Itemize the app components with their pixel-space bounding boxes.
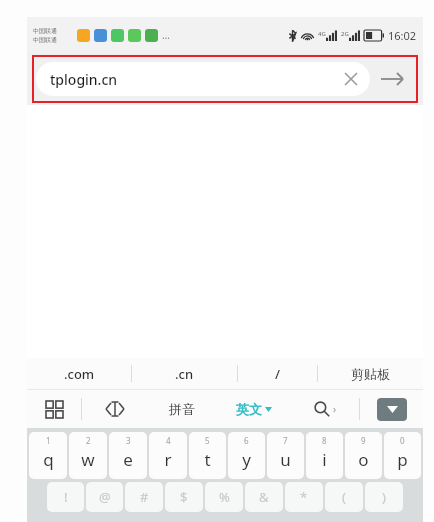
staticText: % bbox=[219, 488, 230, 506]
button[interactable]: 2 bbox=[69, 432, 107, 479]
staticText: 2G bbox=[341, 30, 349, 38]
staticText: & bbox=[259, 488, 269, 506]
button[interactable]: 6 bbox=[228, 432, 265, 479]
button[interactable]: 0 bbox=[384, 432, 421, 479]
button[interactable]: .cn bbox=[132, 358, 237, 389]
button[interactable]: 9 bbox=[345, 432, 382, 479]
staticText: 拼音 bbox=[169, 401, 195, 417]
staticText: e bbox=[123, 448, 133, 471]
staticText: / bbox=[275, 365, 281, 383]
button[interactable]: tplogin.cn bbox=[36, 62, 370, 96]
staticText: q bbox=[43, 448, 54, 471]
staticText: # bbox=[140, 488, 149, 506]
button[interactable]: 1 bbox=[29, 432, 67, 479]
staticText: ) bbox=[382, 488, 386, 506]
staticText: 7 bbox=[283, 435, 288, 446]
staticText: y bbox=[242, 448, 251, 471]
staticText: 0 bbox=[400, 435, 405, 446]
button[interactable]: 8 bbox=[306, 432, 343, 479]
staticText: tplogin.cn bbox=[50, 70, 340, 89]
button[interactable]: & bbox=[245, 482, 283, 512]
button[interactable] bbox=[27, 390, 81, 428]
staticText: u bbox=[280, 448, 291, 471]
staticText: 6 bbox=[244, 435, 249, 446]
button[interactable]: % bbox=[205, 482, 243, 512]
staticText: 剪贴板 bbox=[351, 366, 390, 382]
button[interactable]: 7 bbox=[267, 432, 304, 479]
button[interactable]: Clear bbox=[340, 68, 362, 90]
staticText: 1 bbox=[46, 435, 51, 446]
staticText: 4 bbox=[166, 435, 171, 446]
button[interactable]: › bbox=[292, 390, 359, 428]
button[interactable]: 3 bbox=[109, 432, 147, 479]
staticText: $ bbox=[180, 488, 188, 506]
button[interactable]: .com bbox=[27, 358, 131, 389]
button[interactable]: $ bbox=[165, 482, 203, 512]
staticText: w bbox=[81, 448, 95, 471]
staticText: ! bbox=[64, 488, 68, 506]
button[interactable]: @ bbox=[86, 482, 123, 512]
staticText: .com bbox=[64, 365, 95, 383]
staticText: @ bbox=[99, 488, 111, 506]
staticText: * bbox=[300, 488, 308, 506]
button[interactable]: 拼音 bbox=[148, 390, 215, 428]
staticText: 2 bbox=[86, 435, 91, 446]
staticText: p bbox=[397, 448, 408, 471]
staticText: 9 bbox=[361, 435, 366, 446]
button[interactable]: 剪贴板 bbox=[318, 358, 423, 389]
button[interactable]: ( bbox=[325, 482, 363, 512]
button[interactable]: 4 bbox=[149, 432, 187, 479]
staticText: ( bbox=[342, 488, 346, 506]
staticText: 3 bbox=[126, 435, 131, 446]
button[interactable]: ! bbox=[47, 482, 84, 512]
staticText: › bbox=[333, 402, 337, 416]
staticText: 4G bbox=[318, 30, 326, 38]
button[interactable]: Go bbox=[370, 59, 414, 99]
staticText: 5 bbox=[205, 435, 210, 446]
staticText: .cn bbox=[175, 365, 194, 383]
button[interactable]: / bbox=[238, 358, 317, 389]
staticText: 16:02 bbox=[388, 28, 417, 43]
button[interactable]: Hide keyboard bbox=[377, 398, 407, 421]
staticText: 中国联通 bbox=[33, 36, 57, 44]
staticText: t bbox=[204, 448, 211, 471]
button[interactable] bbox=[82, 390, 148, 428]
staticText: r bbox=[164, 448, 172, 471]
button[interactable]: 5 bbox=[189, 432, 226, 479]
button[interactable]: ) bbox=[365, 482, 403, 512]
staticText: … bbox=[162, 28, 170, 42]
staticText: i bbox=[322, 448, 327, 471]
button[interactable]: 英文 bbox=[215, 390, 292, 428]
staticText: 英文 bbox=[236, 401, 262, 417]
staticText: o bbox=[358, 448, 369, 471]
button[interactable]: * bbox=[285, 482, 323, 512]
button[interactable]: # bbox=[125, 482, 163, 512]
staticText: 中国联通 bbox=[33, 27, 57, 35]
staticText: 8 bbox=[322, 435, 327, 446]
